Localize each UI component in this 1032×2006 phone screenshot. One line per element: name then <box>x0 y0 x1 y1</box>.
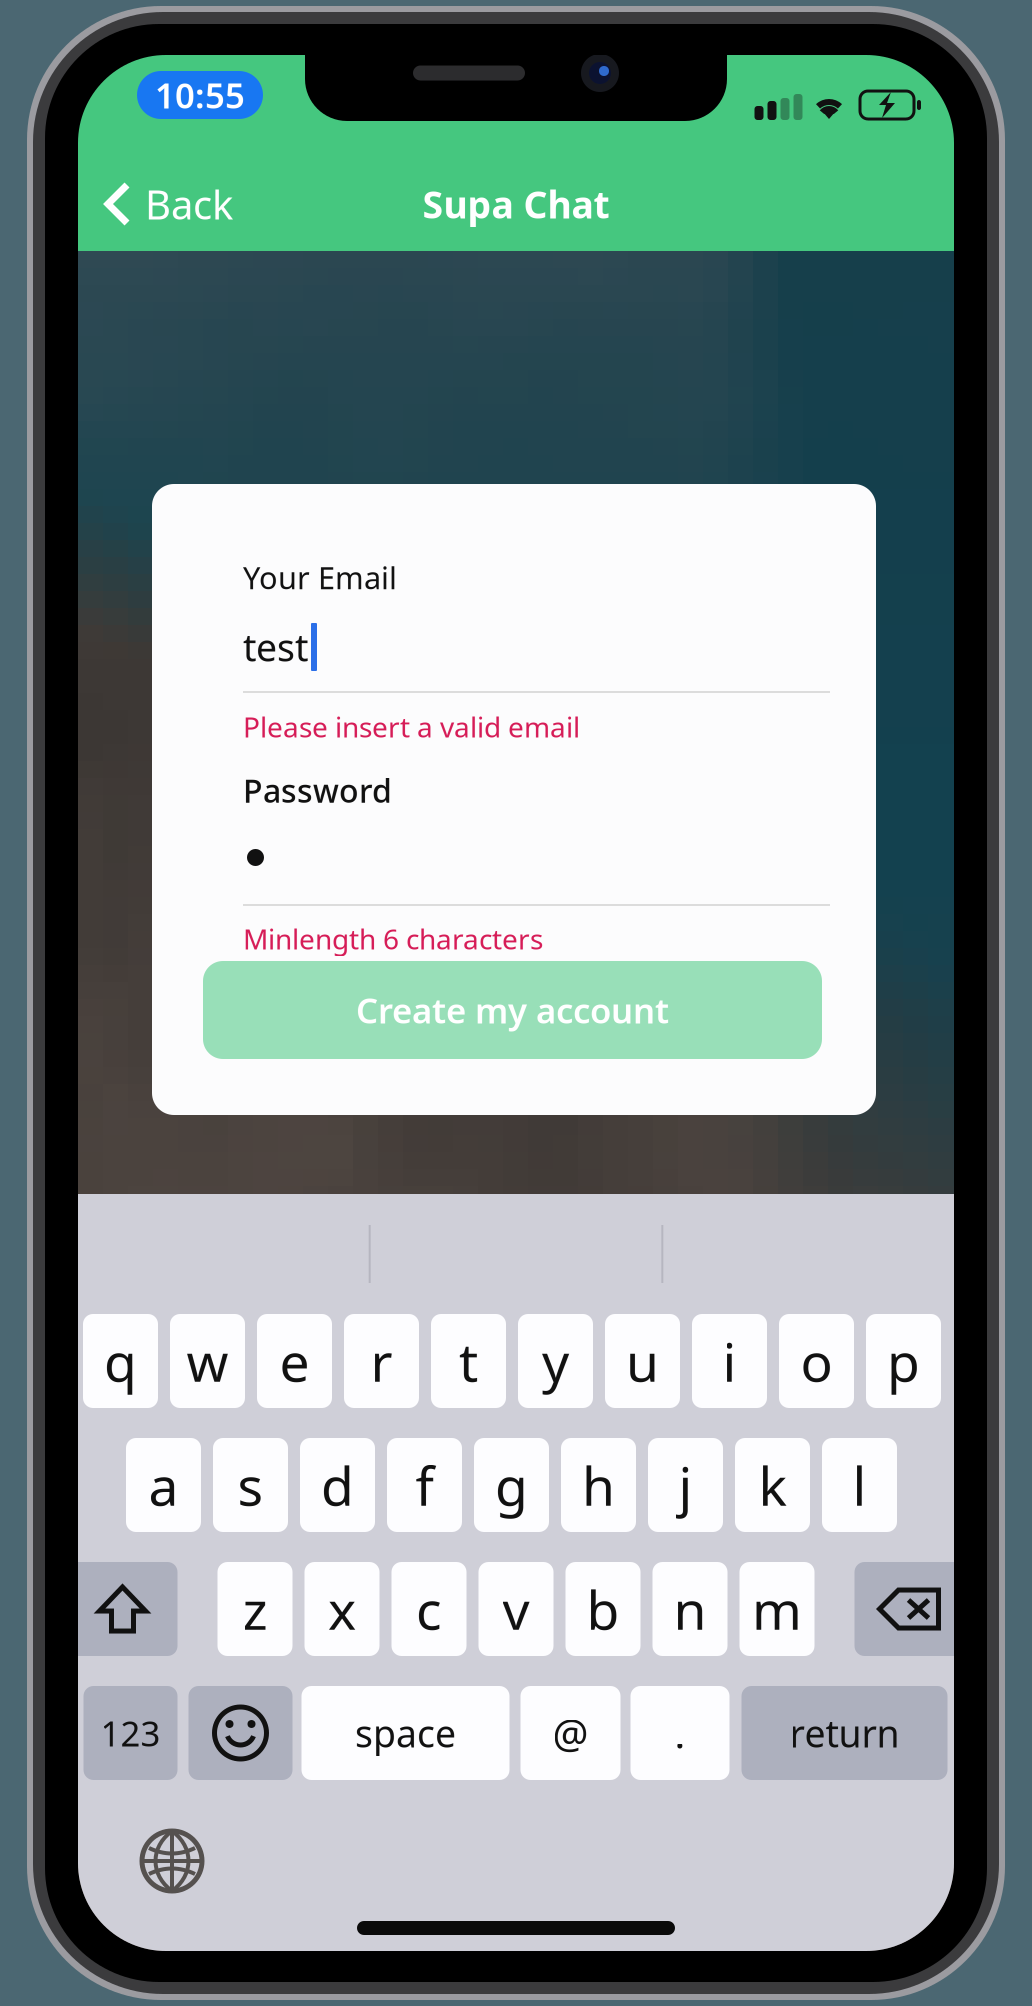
button[interactable]: f <box>387 1438 462 1532</box>
staticText: b <box>586 1574 619 1644</box>
button[interactable]: s <box>213 1438 288 1532</box>
button[interactable]: . <box>630 1686 729 1780</box>
button[interactable]: r <box>344 1314 419 1408</box>
button[interactable]: w <box>170 1314 245 1408</box>
button[interactable]: Delete <box>854 1562 964 1656</box>
staticText: 123 <box>100 1710 160 1756</box>
button[interactable]: Switch keyboard <box>137 1826 207 1896</box>
button[interactable]: o <box>779 1314 854 1408</box>
staticText: . <box>674 1706 685 1759</box>
button[interactable]: Back <box>78 165 251 243</box>
staticText: r <box>370 1326 392 1396</box>
staticText: Your Email <box>243 557 397 598</box>
staticText: Password <box>243 769 392 811</box>
staticText: m <box>752 1574 802 1644</box>
staticText: p <box>887 1326 920 1396</box>
staticText: c <box>416 1574 442 1644</box>
staticText: x <box>328 1574 356 1644</box>
button[interactable]: u <box>605 1314 680 1408</box>
staticText: Create my account <box>356 987 669 1033</box>
button[interactable]: y <box>518 1314 593 1408</box>
button[interactable]: g <box>474 1438 549 1532</box>
staticText: o <box>800 1326 832 1396</box>
staticText: t <box>459 1326 478 1396</box>
staticText: test <box>243 622 308 672</box>
button[interactable]: e <box>257 1314 332 1408</box>
button[interactable]: Emoji <box>188 1686 292 1780</box>
button[interactable]: k <box>735 1438 810 1532</box>
staticText: u <box>626 1326 659 1396</box>
button[interactable]: i <box>692 1314 767 1408</box>
staticText: a <box>148 1450 178 1520</box>
staticText: y <box>542 1326 569 1396</box>
button[interactable]: return <box>741 1686 947 1780</box>
staticText: h <box>582 1450 615 1520</box>
staticText: Back <box>145 177 233 230</box>
staticText: n <box>673 1574 706 1644</box>
staticText: j <box>678 1450 692 1520</box>
button[interactable]: @ <box>520 1686 620 1780</box>
button[interactable]: p <box>866 1314 941 1408</box>
staticText: w <box>186 1326 228 1396</box>
staticText: d <box>321 1450 354 1520</box>
staticText: @ <box>552 1706 588 1759</box>
staticText: v <box>502 1574 529 1644</box>
button[interactable]: n <box>652 1562 727 1656</box>
button[interactable]: d <box>300 1438 375 1532</box>
button[interactable]: q <box>83 1314 158 1408</box>
button[interactable]: m <box>739 1562 814 1656</box>
staticText: Minlength 6 characters <box>243 920 543 957</box>
button[interactable]: c <box>391 1562 466 1656</box>
staticText: q <box>104 1326 137 1396</box>
button[interactable]: Create my account <box>203 961 822 1059</box>
button[interactable]: x <box>304 1562 379 1656</box>
button[interactable]: b <box>565 1562 640 1656</box>
staticText: s <box>237 1450 263 1520</box>
staticText: l <box>852 1450 866 1520</box>
staticText: return <box>789 1708 899 1758</box>
staticText: 10:55 <box>155 72 245 118</box>
button[interactable]: a <box>126 1438 201 1532</box>
button[interactable]: l <box>822 1438 897 1532</box>
staticText: space <box>355 1708 456 1758</box>
staticText: f <box>415 1450 433 1520</box>
button[interactable]: space <box>301 1686 509 1780</box>
staticText: g <box>495 1450 528 1520</box>
staticText: Please insert a valid email <box>243 708 580 745</box>
button[interactable]: v <box>478 1562 553 1656</box>
button[interactable]: t <box>431 1314 506 1408</box>
button[interactable]: z <box>217 1562 292 1656</box>
staticText: i <box>722 1326 736 1396</box>
staticText: z <box>242 1574 267 1644</box>
staticText: e <box>279 1326 309 1396</box>
button[interactable]: Shift <box>67 1562 177 1656</box>
staticText: Supa Chat <box>422 179 609 229</box>
staticText: k <box>758 1450 786 1520</box>
button[interactable]: h <box>561 1438 636 1532</box>
button[interactable]: 123 <box>83 1686 177 1780</box>
button[interactable]: j <box>648 1438 723 1532</box>
